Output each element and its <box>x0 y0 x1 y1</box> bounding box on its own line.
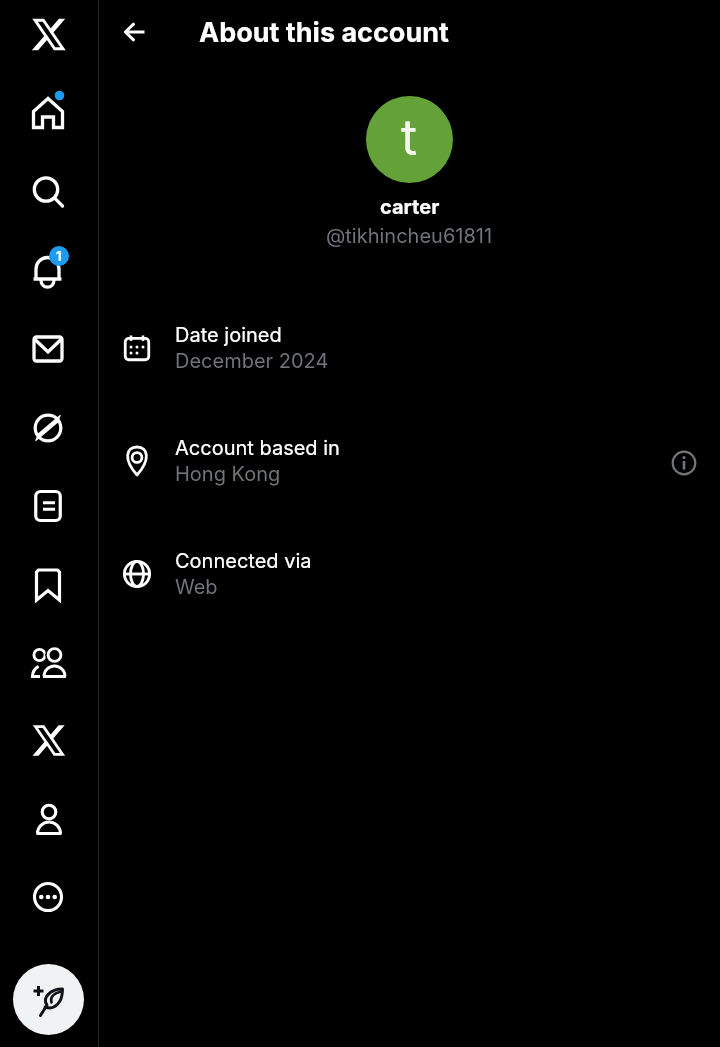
staticText: 1 <box>56 248 62 264</box>
staticText: Web <box>175 575 218 599</box>
button[interactable]: Date joined <box>99 319 720 385</box>
button[interactable]: X <box>14 0 82 68</box>
button[interactable]: Home <box>14 79 82 147</box>
button[interactable]: Account based in <box>99 432 720 498</box>
staticText: December 2024 <box>175 349 329 373</box>
button[interactable]: Bookmarks <box>14 551 82 619</box>
staticText: @tikhincheu61811 <box>326 224 493 248</box>
button[interactable]: Notifications <box>14 236 82 304</box>
button[interactable]: Lists <box>14 472 82 540</box>
staticText: Hong Kong <box>175 462 281 486</box>
staticText: t <box>401 108 418 167</box>
staticText: About this account <box>199 16 449 49</box>
button[interactable]: Grok <box>14 394 82 462</box>
button[interactable]: Back <box>112 10 156 54</box>
button[interactable]: More information <box>662 441 706 485</box>
button[interactable]: Post <box>13 964 84 1035</box>
button[interactable]: Connected via <box>99 545 720 611</box>
button[interactable]: More <box>14 863 82 931</box>
staticText: Connected via <box>175 549 312 573</box>
button[interactable]: Communities <box>14 629 82 697</box>
staticText: Account based in <box>175 436 340 460</box>
button[interactable]: Premium <box>14 706 82 774</box>
button[interactable]: Profile <box>14 785 82 853</box>
button[interactable]: Messages <box>14 315 82 383</box>
staticText: carter <box>380 195 440 219</box>
staticText: Date joined <box>175 323 282 347</box>
button[interactable]: Search <box>14 158 82 226</box>
